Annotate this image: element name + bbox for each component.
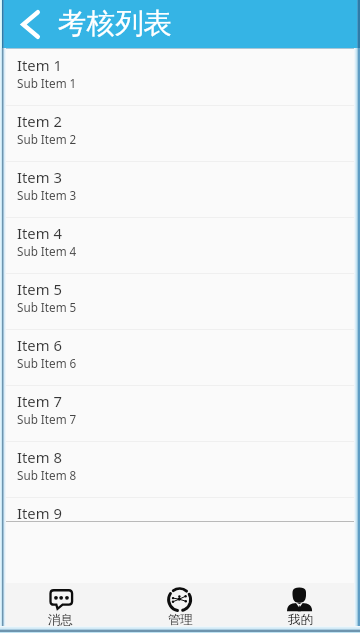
button[interactable]: Item 1 bbox=[0, 50, 360, 106]
staticText: Item 1 bbox=[17, 55, 62, 75]
button[interactable]: 我的 bbox=[240, 583, 360, 633]
button[interactable]: Item 7 bbox=[0, 386, 360, 442]
staticText: Sub Item 1 bbox=[17, 75, 77, 91]
button[interactable]: Item 9 bbox=[0, 498, 360, 522]
staticText: Sub Item 6 bbox=[17, 355, 77, 371]
staticText: Item 3 bbox=[17, 167, 62, 187]
staticText: Item 2 bbox=[17, 111, 62, 131]
staticText: Item 7 bbox=[17, 391, 62, 411]
button[interactable]: Back bbox=[0, 0, 52, 48]
staticText: Item 6 bbox=[17, 335, 62, 355]
staticText: 我的 bbox=[288, 612, 313, 628]
staticText: Sub Item 7 bbox=[17, 411, 77, 427]
staticText: 消息 bbox=[48, 612, 73, 628]
button[interactable]: 消息 bbox=[0, 583, 120, 633]
staticText: Sub Item 5 bbox=[17, 299, 77, 315]
staticText: Item 9 bbox=[17, 503, 62, 522]
button[interactable]: Item 6 bbox=[0, 330, 360, 386]
button[interactable]: Item 8 bbox=[0, 442, 360, 498]
button[interactable]: Item 5 bbox=[0, 274, 360, 330]
button[interactable]: Item 4 bbox=[0, 218, 360, 274]
button[interactable]: Item 3 bbox=[0, 162, 360, 218]
button[interactable]: Item 2 bbox=[0, 106, 360, 162]
staticText: Item 4 bbox=[17, 223, 62, 243]
staticText: Sub Item 4 bbox=[17, 243, 77, 259]
button[interactable]: 管理 bbox=[120, 583, 240, 633]
staticText: Item 5 bbox=[17, 279, 62, 299]
staticText: Sub Item 2 bbox=[17, 131, 77, 147]
staticText: Item 8 bbox=[17, 447, 62, 467]
staticText: 考核列表 bbox=[58, 6, 172, 42]
staticText: Sub Item 3 bbox=[17, 187, 77, 203]
staticText: 管理 bbox=[168, 612, 193, 628]
staticText: Sub Item 8 bbox=[17, 467, 77, 483]
